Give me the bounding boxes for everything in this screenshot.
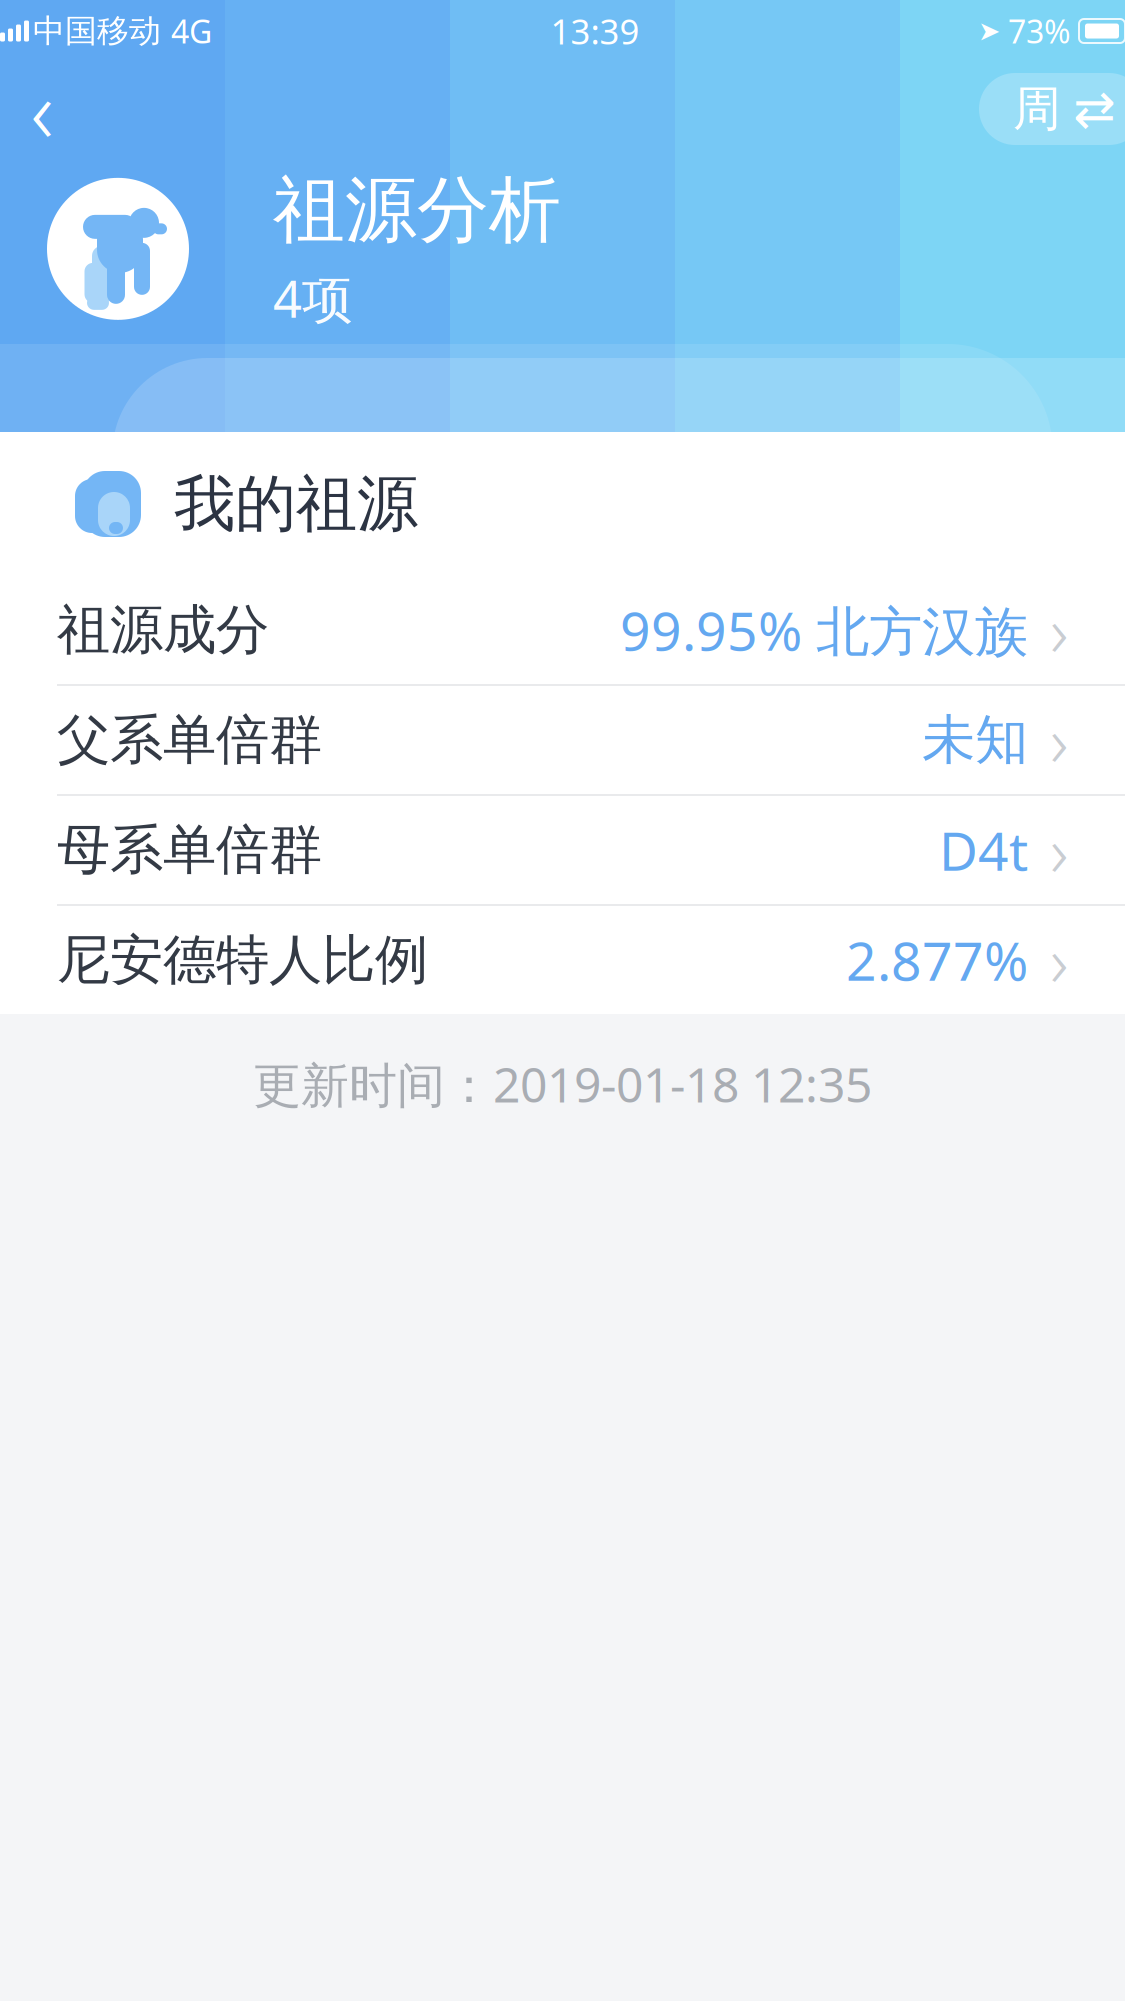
staticText: 母系单倍群	[57, 817, 322, 883]
staticText: 4项	[273, 264, 353, 332]
staticText: ›	[1050, 804, 1068, 896]
staticText: 尼安德特人比例	[57, 927, 428, 993]
button[interactable]: 尼安德特人比例	[0, 906, 1125, 1014]
staticText: 更新时间：2019-01-18 12:35	[253, 1052, 872, 1116]
staticText: D4t	[939, 815, 1028, 885]
button[interactable]: 祖源成分	[0, 576, 1125, 684]
staticText: 73%	[1008, 10, 1071, 52]
staticText: 祖源分析	[273, 166, 561, 254]
staticText: 父系单倍群	[57, 707, 322, 773]
staticText: 2.877%	[846, 925, 1028, 995]
staticText: ›	[1050, 584, 1068, 676]
button[interactable]: 母系单倍群	[0, 796, 1125, 904]
button[interactable]: 返回	[0, 66, 90, 152]
staticText: ›	[1050, 914, 1068, 1006]
staticText: 13:39	[550, 8, 639, 54]
staticText: ⇄	[1073, 80, 1115, 138]
button[interactable]: 父系单倍群	[0, 686, 1125, 794]
staticText: 未知	[922, 707, 1028, 773]
staticText: 99.95% 北方汉族	[620, 595, 1028, 665]
staticText: ›	[1050, 694, 1068, 786]
staticText: 周	[1013, 79, 1061, 138]
staticText: ‹	[30, 51, 53, 167]
staticText: ➤	[978, 16, 1000, 46]
staticText: 祖源成分	[57, 597, 269, 663]
staticText: 中国移动	[33, 11, 161, 51]
staticText: 4G	[171, 10, 212, 52]
staticText: 我的祖源	[174, 466, 418, 542]
button[interactable]: 切换周期	[979, 73, 1125, 145]
